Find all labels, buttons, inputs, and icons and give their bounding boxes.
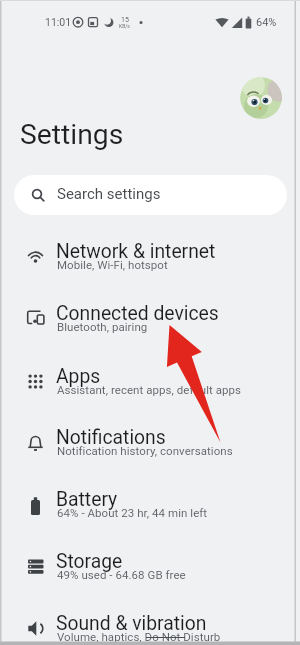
button[interactable]: Network & internet <box>6 230 294 286</box>
staticText: Search settings <box>57 185 161 203</box>
button[interactable]: Notifications <box>6 416 294 472</box>
staticText: Apps <box>56 365 101 388</box>
button[interactable] <box>240 77 282 119</box>
staticText: Network & internet <box>56 240 216 263</box>
staticText: 11:01 <box>45 16 72 28</box>
button[interactable]: Sound & vibration <box>6 602 294 645</box>
staticText: Volume, haptics, Do Not Disturb <box>57 630 221 643</box>
button[interactable]: Search settings <box>14 175 287 215</box>
staticText: Connected devices <box>56 302 219 325</box>
staticText: KB/s <box>119 23 130 29</box>
staticText: Mobile, Wi-Fi, hotspot <box>57 258 168 271</box>
button[interactable]: Apps <box>6 355 294 411</box>
staticText: Notification history, conversations <box>57 444 233 457</box>
staticText: 64% <box>256 16 277 29</box>
button[interactable]: Battery <box>6 478 294 534</box>
button[interactable]: Connected devices <box>6 292 294 348</box>
staticText: Storage <box>56 550 123 573</box>
staticText: Notifications <box>56 426 166 449</box>
staticText: Settings <box>20 118 124 151</box>
staticText: 64% - About 23 hr, 44 min left <box>57 506 208 519</box>
button[interactable]: Storage <box>6 540 294 596</box>
staticText: 49% used - 64.68 GB free <box>57 568 186 581</box>
staticText: Bluetooth, pairing <box>57 320 148 333</box>
staticText: Assistant, recent apps, default apps <box>57 383 242 396</box>
staticText: Battery <box>56 488 118 511</box>
staticText: Sound & vibration <box>56 612 207 635</box>
staticText: 15 <box>121 16 129 24</box>
